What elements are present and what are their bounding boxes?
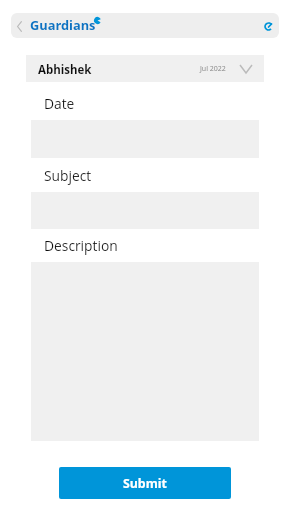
staticText: Description	[44, 236, 118, 255]
button[interactable]: Refresh	[257, 14, 279, 38]
button[interactable]: Submit	[59, 467, 231, 499]
staticText: Submit	[123, 475, 167, 492]
staticText: Abhishek	[38, 62, 92, 78]
button[interactable]: Abhishek	[26, 55, 264, 82]
staticText: Subject	[44, 166, 92, 185]
button[interactable]: Back	[11, 14, 30, 38]
staticText: Jul 2022	[200, 64, 226, 74]
staticText: Guardians	[30, 16, 96, 33]
staticText: Date	[44, 94, 75, 113]
